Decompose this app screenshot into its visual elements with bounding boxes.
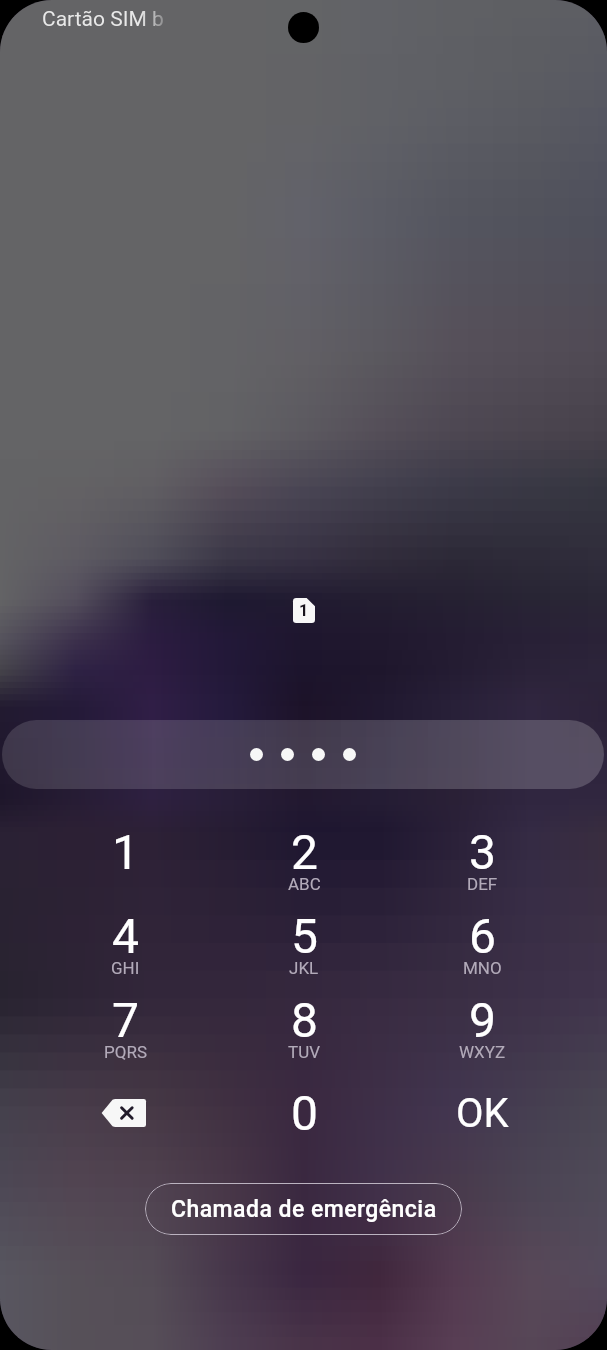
button[interactable]: 9 bbox=[393, 987, 571, 1071]
button[interactable]: 7 bbox=[36, 987, 215, 1071]
button[interactable]: 2 bbox=[215, 819, 393, 903]
staticText: MNO bbox=[463, 958, 502, 978]
staticText: 9 bbox=[469, 992, 496, 1048]
staticText: 3 bbox=[469, 824, 496, 880]
staticText: 8 bbox=[291, 992, 318, 1048]
staticText: 5 bbox=[291, 908, 318, 964]
staticText: DEF bbox=[467, 874, 498, 894]
staticText: Cartão SIM b bbox=[42, 7, 164, 32]
staticText: PQRS bbox=[104, 1042, 147, 1062]
button[interactable]: 4 bbox=[36, 903, 215, 987]
staticText: OK bbox=[456, 1090, 509, 1137]
staticText: JKL bbox=[289, 958, 319, 978]
button[interactable]: OK bbox=[393, 1071, 571, 1155]
staticText: 2 bbox=[291, 824, 318, 880]
staticText: 6 bbox=[469, 908, 496, 964]
staticText: 0 bbox=[291, 1085, 318, 1141]
button[interactable]: 5 bbox=[215, 903, 393, 987]
staticText: ABC bbox=[288, 874, 321, 894]
staticText: 1 bbox=[299, 601, 309, 620]
button[interactable]: 1 bbox=[36, 819, 215, 903]
staticText: 1 bbox=[112, 824, 139, 880]
staticText: 7 bbox=[112, 992, 139, 1048]
button[interactable]: 8 bbox=[215, 987, 393, 1071]
button[interactable]: Delete bbox=[36, 1071, 215, 1155]
button[interactable]: 3 bbox=[393, 819, 571, 903]
button[interactable]: 0 bbox=[215, 1071, 393, 1155]
button[interactable]: 6 bbox=[393, 903, 571, 987]
staticText: GHI bbox=[111, 958, 140, 978]
button[interactable]: Chamada de emergência bbox=[145, 1183, 462, 1235]
staticText: 4 bbox=[112, 908, 139, 964]
staticText: WXYZ bbox=[459, 1042, 506, 1062]
staticText: TUV bbox=[288, 1042, 320, 1062]
staticText: Chamada de emergência bbox=[171, 1196, 437, 1223]
